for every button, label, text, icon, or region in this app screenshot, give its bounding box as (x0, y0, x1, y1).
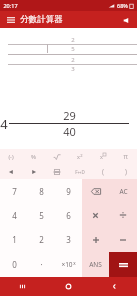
staticText: 2 (71, 56, 75, 64)
button[interactable]: Sound (120, 14, 132, 26)
button[interactable]: Multiply (82, 203, 109, 227)
button[interactable]: ANS (82, 252, 109, 277)
button[interactable]: Open parenthesis (91, 164, 114, 179)
button[interactable]: 9 (55, 179, 82, 203)
button[interactable]: Pi (114, 149, 137, 164)
button[interactable]: AC (109, 179, 137, 203)
button[interactable]: Delete (82, 179, 109, 203)
button[interactable]: Minus (109, 227, 137, 252)
button[interactable]: Left (0, 164, 22, 179)
staticText: 2 (80, 153, 83, 158)
button[interactable]: · (28, 252, 55, 277)
staticText: 2 (39, 234, 44, 245)
button[interactable]: Plus (82, 227, 109, 252)
button[interactable]: Back (91, 277, 137, 296)
staticText: % (31, 153, 36, 161)
button[interactable]: 6 (55, 203, 82, 227)
button[interactable]: 1 (0, 227, 28, 252)
staticText: 7 (12, 186, 17, 197)
button[interactable]: 3 (55, 227, 82, 252)
staticText: 20:17 (3, 2, 18, 9)
staticText: 5 (71, 45, 75, 53)
button[interactable]: 8 (28, 179, 55, 203)
staticText: 8 (39, 186, 44, 197)
button[interactable]: x squared (68, 149, 91, 164)
button[interactable]: Home (45, 277, 91, 296)
button[interactable]: Close parenthesis (114, 164, 137, 179)
staticText: 6 (66, 210, 71, 221)
staticText: 9 (66, 186, 71, 197)
staticText: x (77, 153, 80, 160)
staticText: 5 (39, 210, 44, 221)
staticText: · (40, 259, 43, 270)
button[interactable]: Equals (109, 252, 137, 277)
staticText: 40 (63, 124, 76, 139)
button[interactable]: Fraction (45, 164, 68, 179)
staticText: 4 (0, 115, 8, 133)
button[interactable]: Square root (45, 149, 68, 164)
staticText: 3 (71, 65, 75, 73)
button[interactable]: x to the power (91, 149, 114, 164)
staticText: ×10 (61, 260, 73, 269)
button[interactable]: 4 (0, 203, 28, 227)
button[interactable]: (-) (0, 149, 22, 164)
staticText: F↔D (75, 169, 85, 175)
staticText: ) (125, 167, 127, 176)
staticText: π (123, 152, 128, 161)
button[interactable]: times ten to the power (55, 252, 82, 277)
button[interactable]: Right (22, 164, 45, 179)
staticText: x (100, 153, 103, 160)
button[interactable]: Divide (109, 203, 137, 227)
button[interactable]: 7 (0, 179, 28, 203)
staticText: 29 (63, 108, 76, 123)
staticText: x (73, 260, 76, 266)
staticText: 1 (12, 234, 17, 245)
staticText: 分數計算器 (20, 14, 63, 25)
staticText: ANS (89, 260, 102, 269)
button[interactable]: 5 (28, 203, 55, 227)
staticText: AC (119, 187, 128, 196)
button[interactable]: Menu (5, 14, 16, 25)
staticText: 68% (117, 2, 128, 9)
button[interactable]: Fraction decimal toggle (68, 164, 91, 179)
staticText: 0 (12, 259, 17, 270)
staticText: 3 (66, 234, 71, 245)
staticText: 2 (71, 36, 75, 44)
staticText: (-) (8, 153, 14, 160)
button[interactable]: 2 (28, 227, 55, 252)
button[interactable]: Percent (22, 149, 45, 164)
staticText: ( (102, 167, 104, 176)
staticText: 4 (12, 210, 17, 221)
button[interactable]: Recents (0, 277, 45, 296)
button[interactable]: 0 (0, 252, 28, 277)
